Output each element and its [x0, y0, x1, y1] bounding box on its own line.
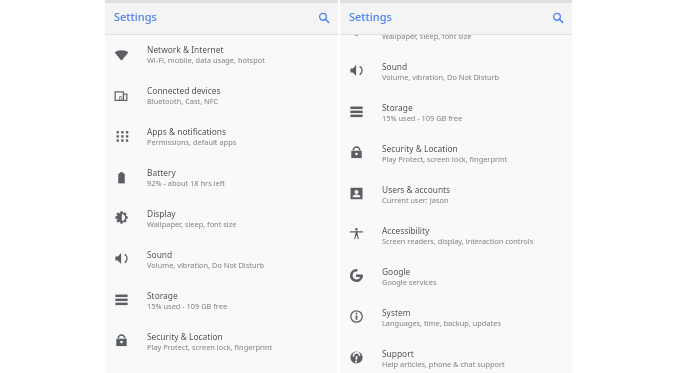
button[interactable]: Security & Location [340, 142, 572, 183]
staticText: Bluetooth, Cast, NFC [147, 96, 219, 106]
button[interactable]: Google [340, 265, 572, 306]
staticText: Security & Location [147, 331, 223, 342]
staticText: Google services [382, 277, 437, 287]
staticText: Volume, vibration, Do Not Disturb [382, 72, 500, 82]
staticText: Users & accounts [382, 184, 451, 195]
staticText: Google [382, 266, 411, 277]
staticText: Wi-Fi, mobile, data usage, hotspot [147, 55, 265, 65]
staticText: Languages, time, backup, updates [382, 318, 501, 328]
staticText: System [382, 307, 411, 318]
button[interactable]: Security & Location [105, 330, 338, 371]
staticText: Display [147, 208, 176, 219]
staticText: Screen readers, display, interaction con… [382, 236, 534, 246]
button[interactable]: Network & Internet [105, 43, 338, 84]
staticText: Connected devices [147, 85, 221, 96]
staticText: Current user: Jason [382, 195, 449, 205]
staticText: 92% - about 18 hrs left [147, 178, 225, 188]
staticText: Volume, vibration, Do Not Disturb [147, 260, 265, 270]
staticText: Apps & notifications [147, 126, 226, 137]
button[interactable]: Sound [340, 60, 572, 101]
button[interactable]: Display [105, 207, 338, 248]
staticText: Settings [349, 9, 392, 24]
staticText: Settings [114, 9, 157, 24]
staticText: Sound [147, 249, 173, 260]
staticText: Play Protect, screen lock, fingerprint [147, 342, 273, 352]
staticText: Help articles, phone & chat support [382, 359, 505, 369]
button[interactable]: Storage [105, 289, 338, 330]
staticText: Play Protect, screen lock, fingerprint [382, 154, 508, 164]
staticText: 15% used - 109 GB free [147, 301, 228, 311]
button[interactable]: Support [340, 347, 572, 373]
button[interactable]: Battery [105, 166, 338, 207]
button[interactable]: Connected devices [105, 84, 338, 125]
staticText: Storage [382, 102, 413, 113]
button[interactable]: Accessibility [340, 224, 572, 265]
button[interactable]: System [340, 306, 572, 347]
button[interactable]: Storage [340, 101, 572, 142]
staticText: Battery [147, 167, 176, 178]
staticText: Support [382, 348, 414, 359]
button[interactable]: Users & accounts [340, 183, 572, 224]
staticText: Network & Internet [147, 44, 224, 55]
button[interactable]: Display [340, 19, 572, 60]
button[interactable]: Search [548, 8, 568, 28]
staticText: Wallpaper, sleep, font size [147, 219, 237, 229]
button[interactable]: Sound [105, 248, 338, 289]
staticText: 15% used - 109 GB free [382, 113, 463, 123]
button[interactable]: Search [314, 8, 334, 28]
staticText: Display [382, 20, 411, 31]
staticText: Security & Location [382, 143, 458, 154]
button[interactable]: Apps & notifications [105, 125, 338, 166]
staticText: Wallpaper, sleep, font size [382, 31, 472, 41]
staticText: Storage [147, 290, 178, 301]
staticText: Permissions, default apps [147, 137, 237, 147]
staticText: Accessibility [382, 225, 430, 236]
staticText: Sound [382, 61, 408, 72]
